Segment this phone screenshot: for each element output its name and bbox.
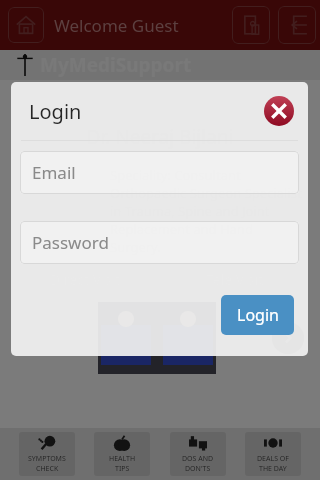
button[interactable]: DEALS OF <box>245 432 301 476</box>
staticText: Welcome Guest <box>54 14 179 37</box>
staticText: THE DAY <box>259 464 287 474</box>
staticText: DON'TS <box>185 464 211 474</box>
staticText: Dr. Neeraj Bijlani <box>0 124 320 150</box>
button[interactable]: Home <box>8 7 44 43</box>
staticText: Email <box>32 161 76 184</box>
staticText: SYMPTOMS <box>28 454 66 464</box>
staticText: TIPS <box>115 464 130 474</box>
staticText: DOS AND <box>182 454 214 464</box>
button[interactable]: Password <box>20 221 299 264</box>
staticText: Password <box>32 231 109 254</box>
button[interactable]: Login <box>221 295 294 335</box>
staticText: Speciality: Consultant Orthopaedic Surge… <box>110 166 306 256</box>
staticText: Login <box>237 304 279 326</box>
button[interactable]: Logout <box>278 6 316 44</box>
staticText: DEALS OF <box>257 454 289 464</box>
button[interactable]: Touch device <box>232 6 270 44</box>
staticText: CHECK <box>36 464 59 474</box>
button[interactable]: Email <box>20 151 299 194</box>
staticText: HEALTH <box>109 454 136 464</box>
staticText: Login <box>29 98 82 125</box>
button[interactable]: Next <box>272 322 304 354</box>
button[interactable]: Close <box>264 96 294 126</box>
button[interactable]: SYMPTOMS <box>19 432 75 476</box>
button[interactable]: HEALTH <box>94 432 150 476</box>
button[interactable]: DOS AND <box>170 432 226 476</box>
